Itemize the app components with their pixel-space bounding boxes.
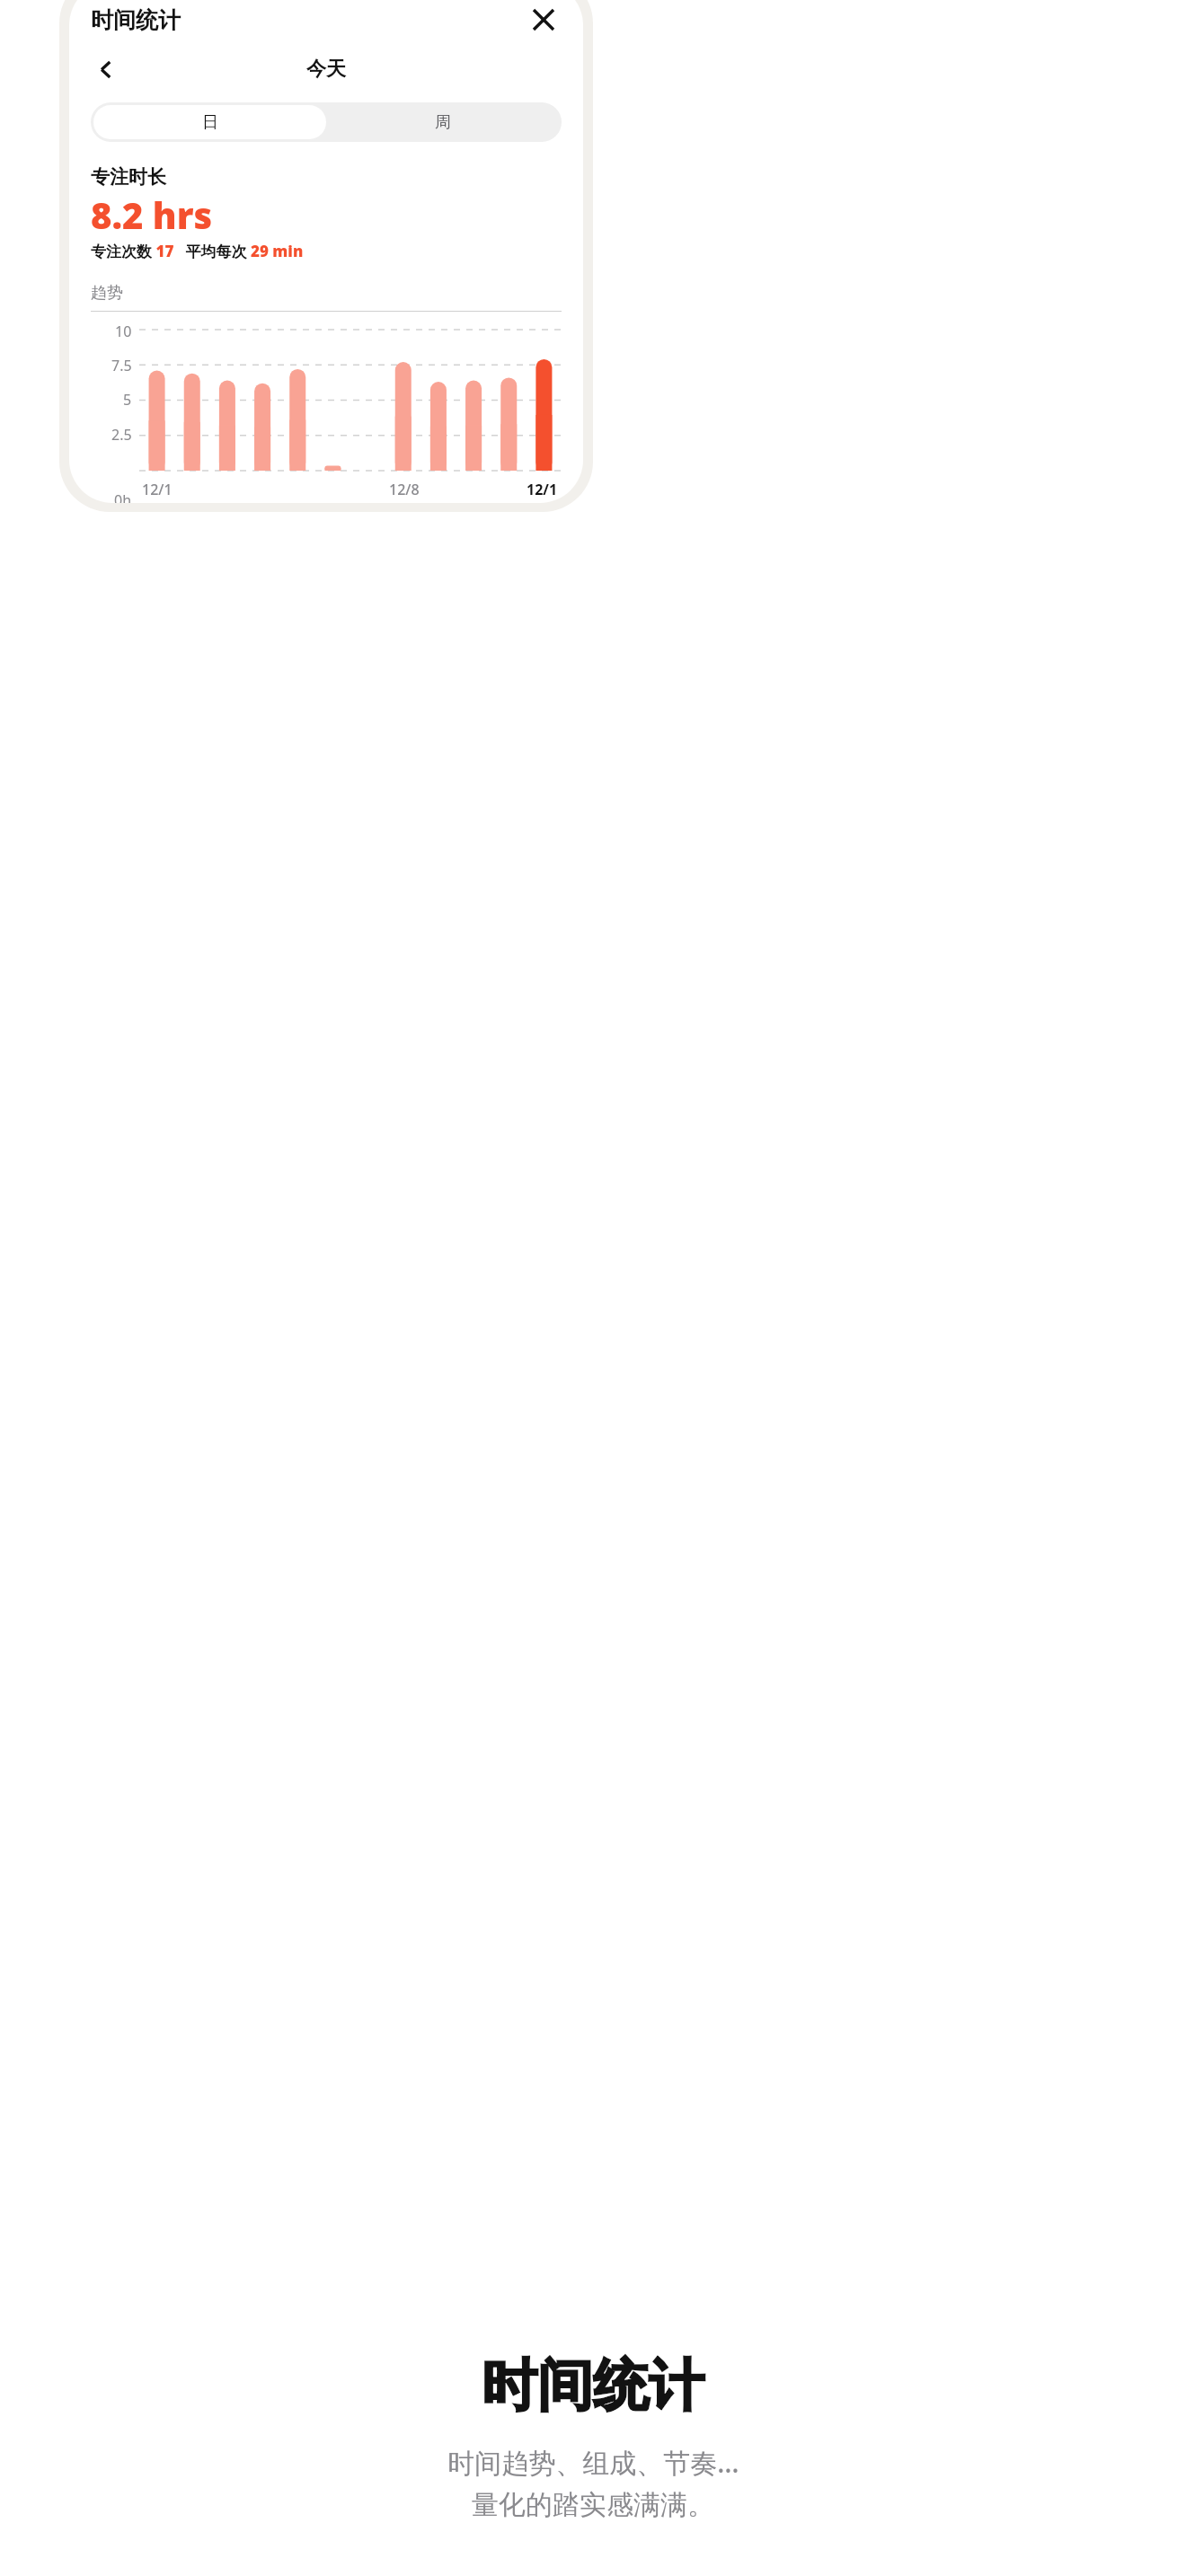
staticText: 7.5	[111, 356, 132, 375]
staticText: 专注时长	[91, 165, 166, 189]
staticText: 0h	[114, 490, 132, 503]
staticText: 周	[435, 112, 451, 133]
staticText: 专注次数 17 平均每次 29 min	[91, 241, 304, 261]
button[interactable]: 周	[326, 105, 559, 139]
staticText: 时间统计	[482, 2351, 704, 2421]
staticText: 2.5	[111, 425, 132, 445]
staticText: 时间趋势、组成、节奏…	[447, 2444, 739, 2481]
button[interactable]: Close	[526, 2, 562, 38]
staticText: 10	[115, 322, 132, 341]
button[interactable]: Back	[91, 54, 121, 84]
staticText: 时间统计	[91, 6, 181, 34]
staticText: 12/1	[142, 480, 173, 499]
staticText: 日	[202, 112, 218, 133]
staticText: 量化的踏实感满满。	[472, 2488, 714, 2522]
staticText: 趋势	[91, 283, 123, 304]
staticText: 5	[123, 390, 132, 410]
staticText: 12/12	[527, 480, 562, 503]
staticText: 8.2 hrs	[91, 190, 213, 239]
staticText: 今天	[306, 57, 346, 82]
staticText: 12/8	[389, 480, 420, 499]
button[interactable]: 日	[93, 105, 326, 139]
